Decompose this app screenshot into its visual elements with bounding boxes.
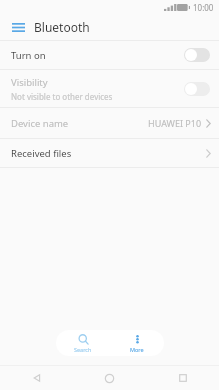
button[interactable]: Device name bbox=[0, 108, 219, 138]
staticText: Not visible to other devices bbox=[11, 91, 113, 102]
staticText: 10:00 bbox=[193, 2, 214, 13]
button[interactable]: More bbox=[110, 330, 164, 356]
staticText: HUAWEI P10 bbox=[148, 117, 202, 129]
staticText: More bbox=[130, 346, 144, 353]
button[interactable]: Search bbox=[56, 330, 110, 356]
button[interactable]: Home bbox=[73, 366, 146, 390]
staticText: Device name bbox=[11, 117, 69, 130]
button[interactable]: Recent apps bbox=[146, 366, 219, 390]
button[interactable]: Back bbox=[0, 366, 73, 390]
button[interactable]: Visibility bbox=[0, 70, 219, 107]
button[interactable]: Received files bbox=[0, 139, 219, 167]
staticText: Turn on bbox=[11, 49, 46, 62]
staticText: Visibility bbox=[11, 76, 48, 89]
staticText: Search bbox=[74, 346, 92, 353]
button[interactable]: Turn on bbox=[0, 41, 219, 69]
staticText: Bluetooth bbox=[34, 19, 90, 35]
button[interactable]: Open navigation drawer bbox=[7, 16, 29, 38]
staticText: Received files bbox=[11, 147, 72, 160]
